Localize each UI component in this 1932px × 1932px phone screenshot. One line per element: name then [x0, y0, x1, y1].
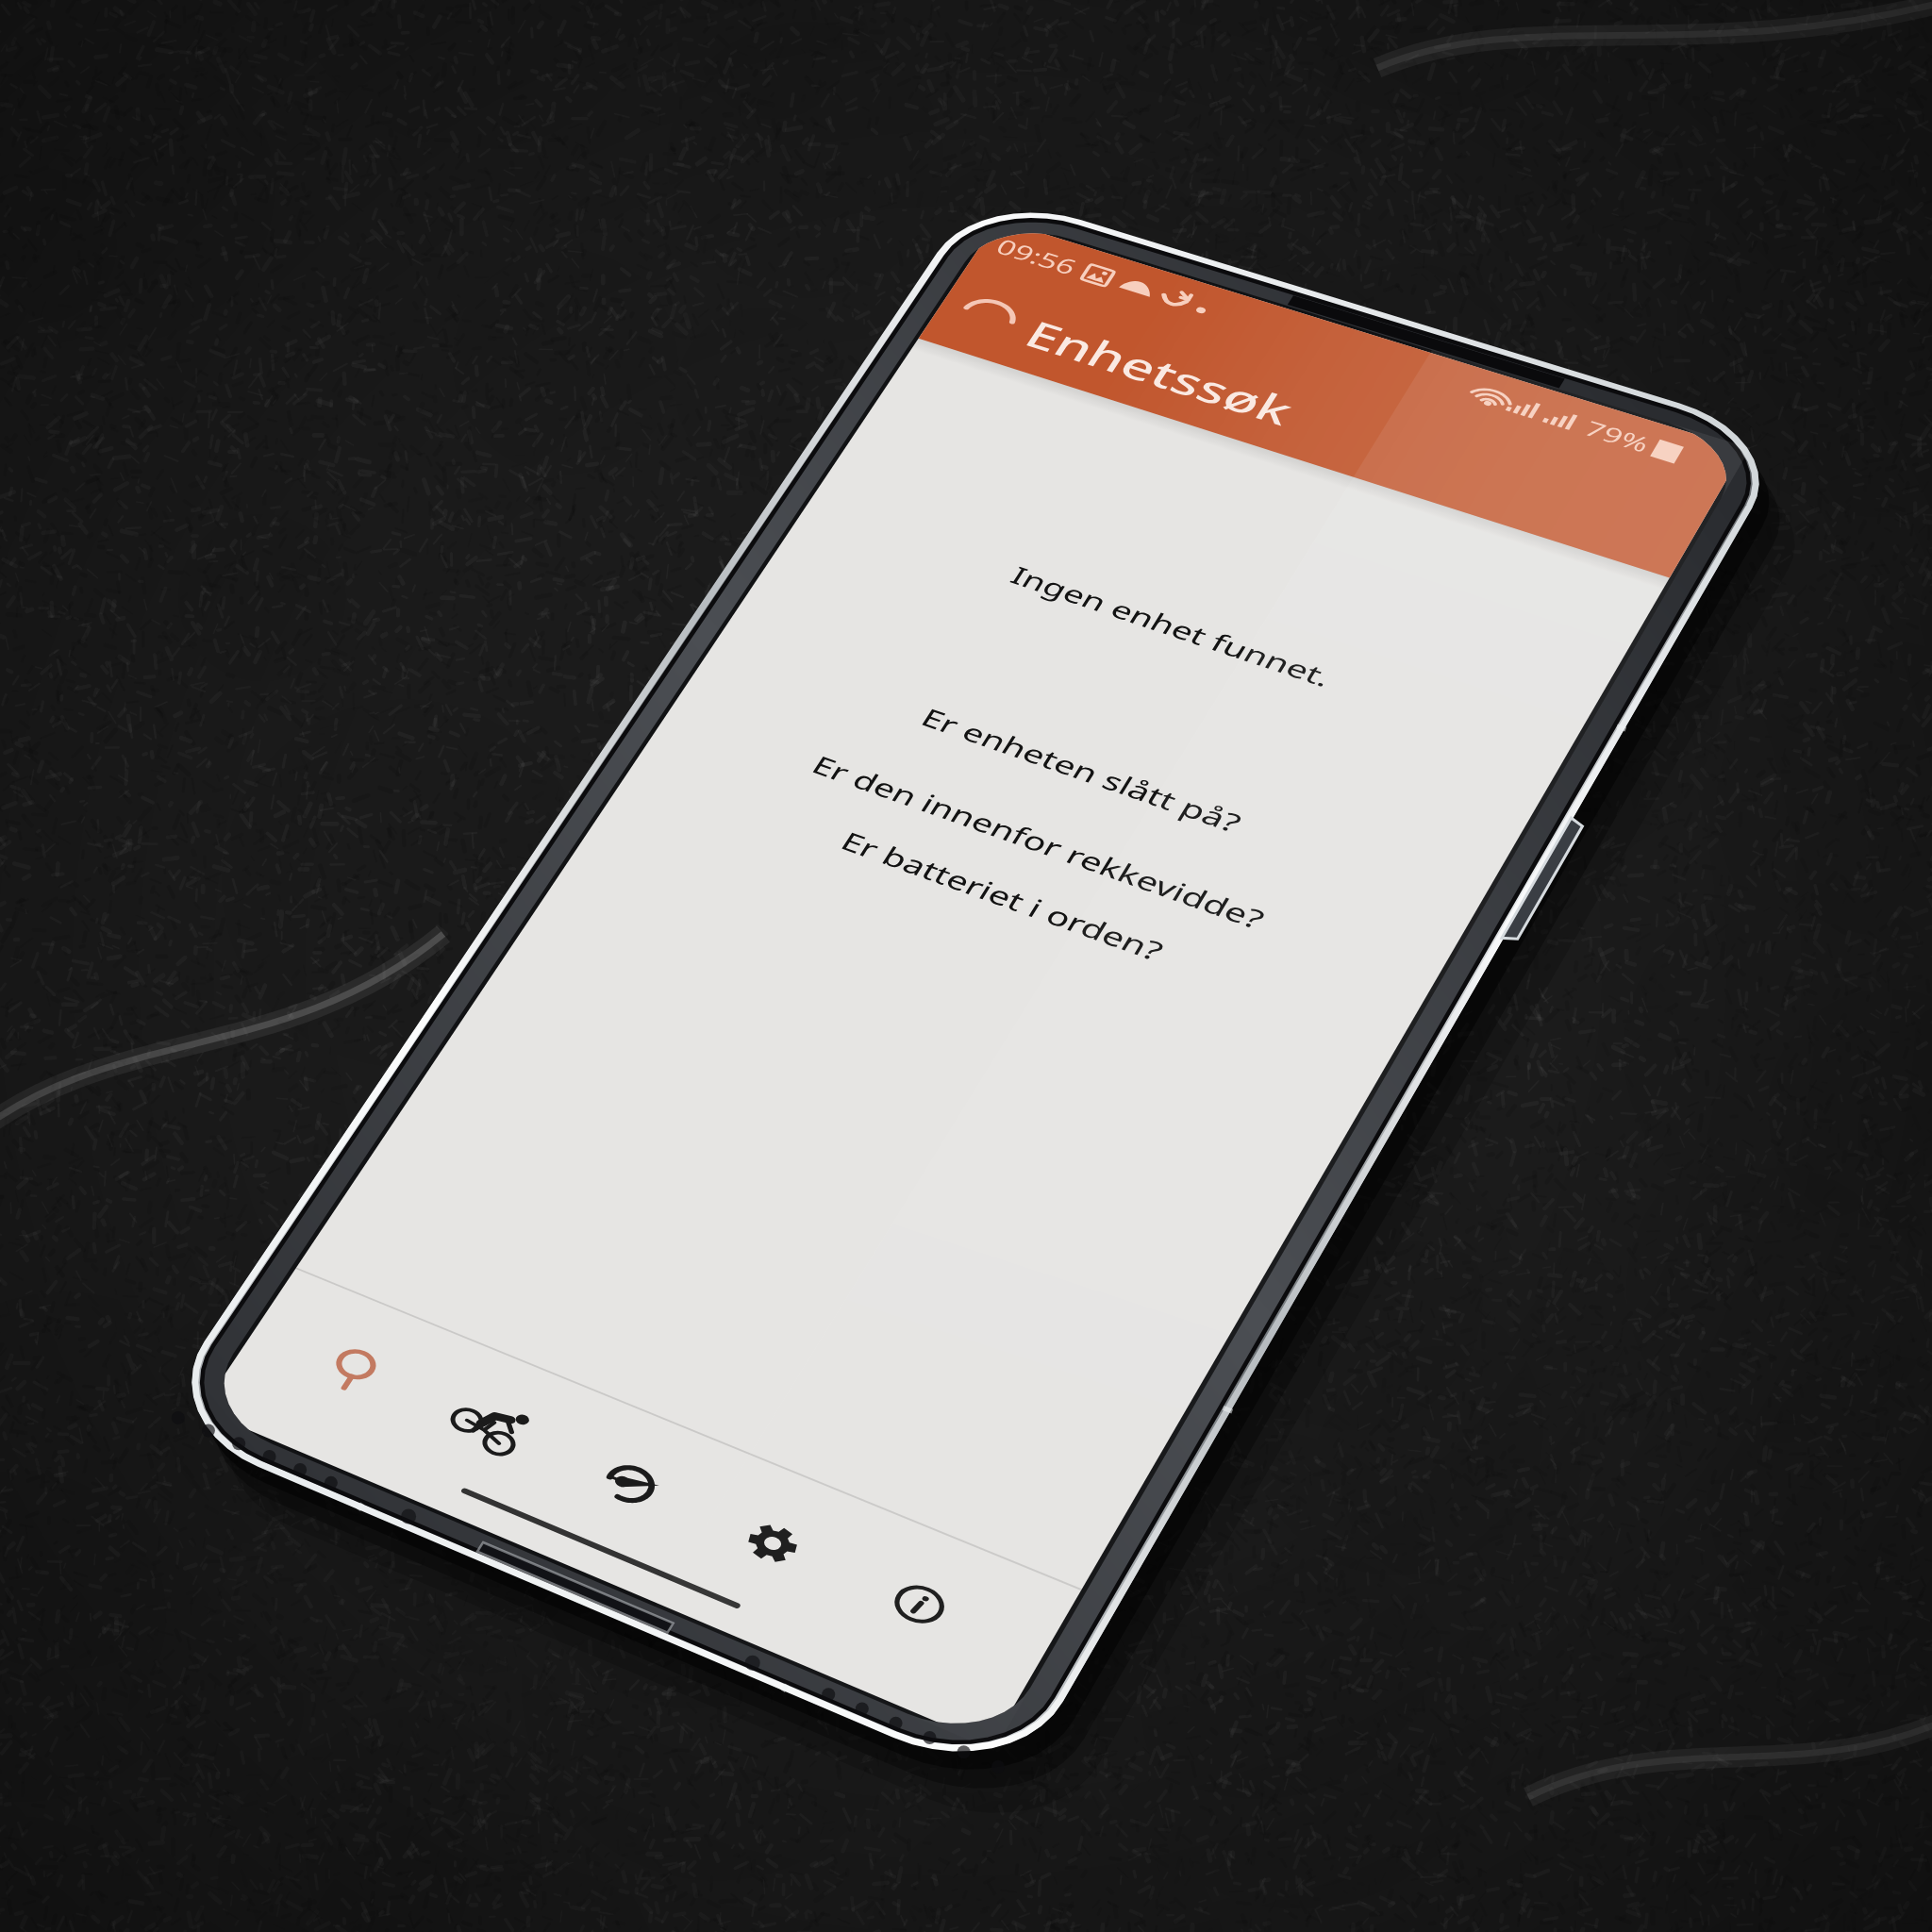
button[interactable]: Enhetssøk – device search screen [0, 0, 1932, 1932]
